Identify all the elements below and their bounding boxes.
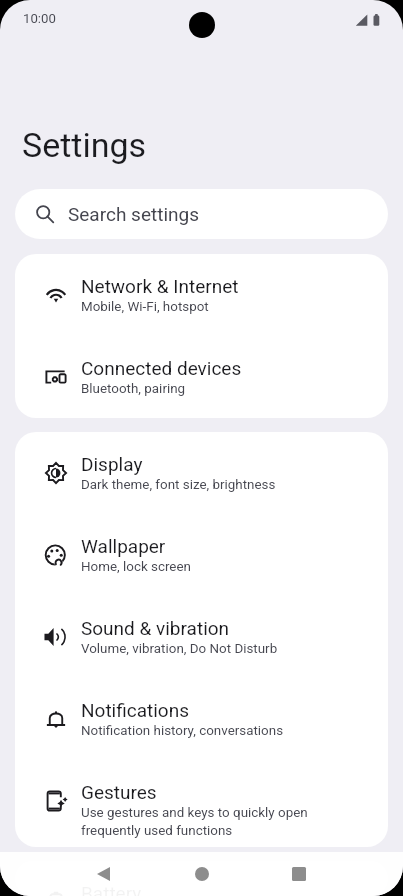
button[interactable]: Home <box>178 852 226 896</box>
button[interactable]: Gestures <box>15 760 388 847</box>
staticText: Dark theme, font size, brightness <box>81 477 276 493</box>
staticText: Notification history, conversations <box>81 723 284 739</box>
staticText: 10:00 <box>23 11 56 26</box>
staticText: Gestures <box>81 781 157 803</box>
staticText: Connected devices <box>81 357 242 379</box>
staticText: Mobile, Wi-Fi, hotspot <box>81 299 209 315</box>
staticText: Volume, vibration, Do Not Disturb <box>81 641 278 657</box>
button[interactable]: Recents <box>275 852 323 896</box>
staticText: Home, lock screen <box>81 559 191 575</box>
staticText: Sound & vibration <box>81 617 230 639</box>
button[interactable]: Battery <box>15 861 388 896</box>
button[interactable]: Connected devices <box>15 336 388 418</box>
staticText: Search settings <box>68 203 199 225</box>
staticText: Display <box>81 453 143 475</box>
staticText: Wallpaper <box>81 535 166 557</box>
button[interactable]: Search settings <box>15 189 388 239</box>
staticText: Network & Internet <box>81 275 239 297</box>
staticText: Settings <box>22 125 147 165</box>
button[interactable]: Notifications <box>15 678 388 760</box>
staticText: Bluetooth, pairing <box>81 381 186 397</box>
button[interactable]: Display <box>15 432 388 514</box>
staticText: Notifications <box>81 699 190 721</box>
button[interactable]: Back <box>79 852 127 896</box>
staticText: Use gestures and keys to quickly open fr… <box>81 805 308 839</box>
button[interactable]: Sound & vibration <box>15 596 388 678</box>
button[interactable]: Wallpaper <box>15 514 388 596</box>
button[interactable]: Network & Internet <box>15 254 388 336</box>
staticText: Battery <box>81 882 142 896</box>
